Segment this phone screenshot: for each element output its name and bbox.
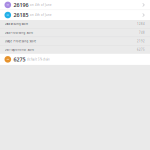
staticText: Usage Processing Score xyxy=(4,39,36,43)
button[interactable]: 26185 xyxy=(0,10,150,20)
staticText: 1284 xyxy=(137,22,145,26)
staticText: default 5% chain xyxy=(27,58,50,61)
button[interactable]: 6275 xyxy=(0,54,150,65)
staticText: 748 xyxy=(139,31,145,34)
staticText: 2192 xyxy=(137,39,145,43)
staticText: User Experience Score xyxy=(4,48,34,51)
staticText: 6275 xyxy=(137,48,145,51)
staticText: 26196 xyxy=(13,1,28,8)
staticText: 26185 xyxy=(13,11,28,19)
staticText: on 4th of June xyxy=(30,13,52,17)
staticText: 6275 xyxy=(13,56,25,63)
staticText: on 4th of June xyxy=(30,3,52,7)
button[interactable]: 26196 xyxy=(0,0,150,10)
staticText: Data Security Score xyxy=(4,22,28,26)
staticText: Data Processing Score xyxy=(4,31,33,34)
